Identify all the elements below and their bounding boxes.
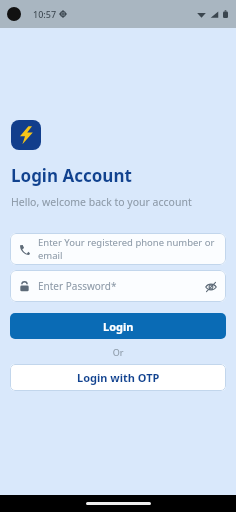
staticText: Enter Password* [38, 279, 198, 293]
staticText: 10:57 [33, 8, 57, 20]
button[interactable]: Show password [204, 280, 217, 293]
staticText: Or [0, 346, 236, 358]
other: App logo [11, 120, 41, 150]
staticText: Login [103, 319, 134, 334]
button[interactable]: Phone [10, 233, 226, 265]
button[interactable]: Password [10, 270, 226, 302]
other: Password [19, 281, 30, 292]
staticText: Login with OTP [77, 370, 160, 385]
button[interactable]: Login with OTP [10, 364, 226, 391]
button[interactable]: Login [10, 313, 226, 339]
staticText: Hello, welcome back to your account [11, 195, 192, 209]
staticText: Enter Your registered phone number or em… [38, 236, 217, 262]
staticText: Login Account [11, 164, 132, 187]
other: Phone [19, 244, 30, 255]
